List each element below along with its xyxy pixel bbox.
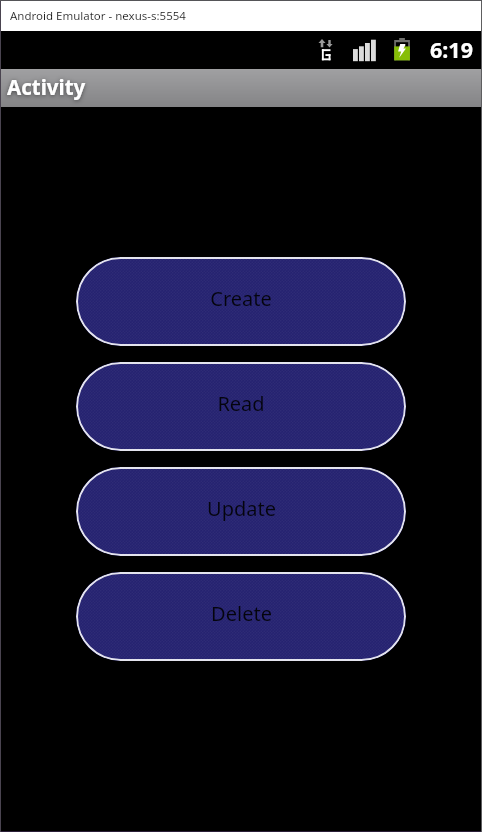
staticText: Activity bbox=[7, 73, 86, 101]
staticText: 6:19 bbox=[430, 35, 473, 58]
staticText: Android Emulator - nexus-s:5554 bbox=[10, 8, 186, 24]
button[interactable]: Create bbox=[76, 257, 406, 346]
other: Signal strength bbox=[353, 39, 376, 62]
button[interactable]: Update bbox=[76, 467, 406, 556]
staticText: Create bbox=[210, 285, 272, 312]
button[interactable]: Read bbox=[76, 362, 406, 451]
staticText: Update bbox=[207, 495, 276, 522]
other: Battery charging bbox=[394, 37, 410, 62]
button[interactable]: Delete bbox=[76, 572, 406, 661]
staticText: Delete bbox=[211, 600, 272, 627]
other: GPRS data bbox=[317, 38, 333, 62]
staticText: Read bbox=[217, 390, 265, 417]
